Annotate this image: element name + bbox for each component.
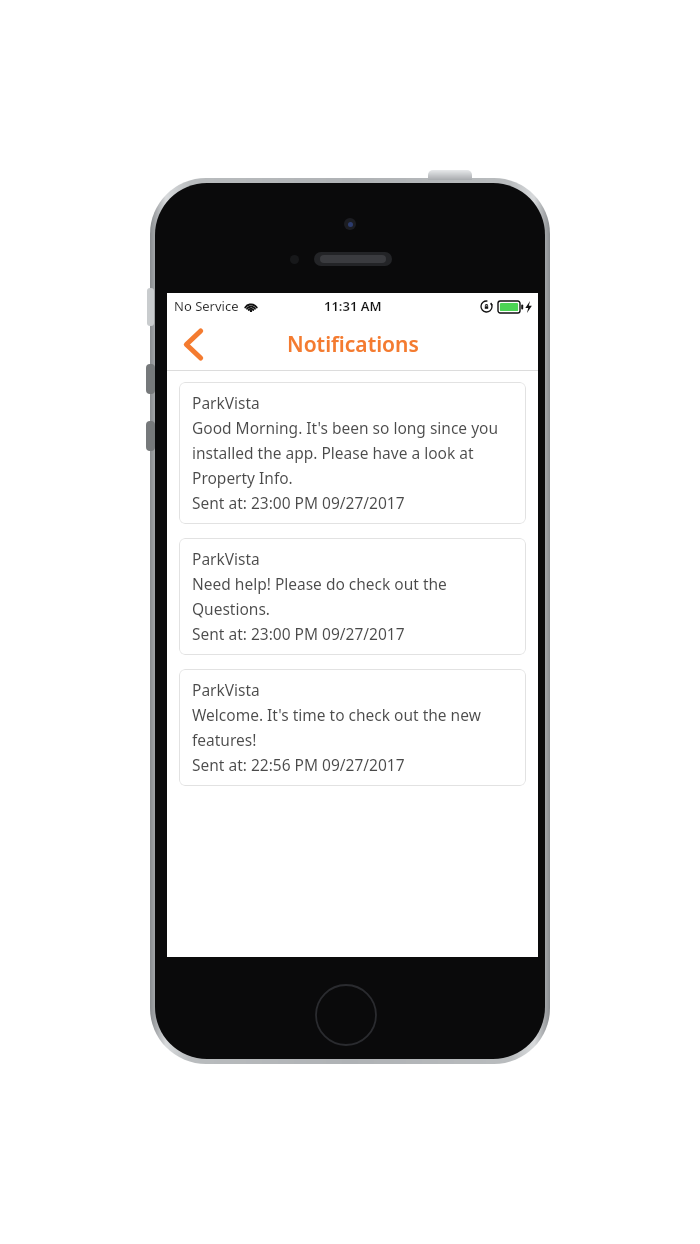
staticText: Sent at: 22:56 PM 09/27/2017 bbox=[192, 754, 405, 775]
staticText: features! bbox=[192, 729, 257, 750]
staticText: Welcome. It's time to check out the new bbox=[192, 704, 481, 725]
button[interactable]: Home bbox=[315, 984, 377, 1046]
staticText: Notifications bbox=[287, 330, 419, 359]
button[interactable]: ParkVista bbox=[179, 669, 526, 786]
staticText: Need help! Please do check out the bbox=[192, 573, 447, 594]
button[interactable]: ParkVista bbox=[179, 382, 526, 524]
staticText: installed the app. Please have a look at bbox=[192, 442, 474, 463]
staticText: ParkVista bbox=[192, 679, 260, 700]
button[interactable]: Back bbox=[167, 319, 219, 370]
staticText: Sent at: 23:00 PM 09/27/2017 bbox=[192, 492, 405, 513]
staticText: 11:31 AM bbox=[324, 297, 382, 315]
staticText: Property Info. bbox=[192, 467, 293, 488]
staticText: ParkVista bbox=[192, 548, 260, 569]
button[interactable]: ParkVista bbox=[179, 538, 526, 655]
staticText: Sent at: 23:00 PM 09/27/2017 bbox=[192, 623, 405, 644]
button[interactable]: Power bbox=[428, 170, 472, 180]
staticText: Good Morning. It's been so long since yo… bbox=[192, 417, 499, 438]
staticText: Questions. bbox=[192, 598, 270, 619]
staticText: No Service bbox=[174, 297, 239, 315]
staticText: ParkVista bbox=[192, 392, 260, 413]
